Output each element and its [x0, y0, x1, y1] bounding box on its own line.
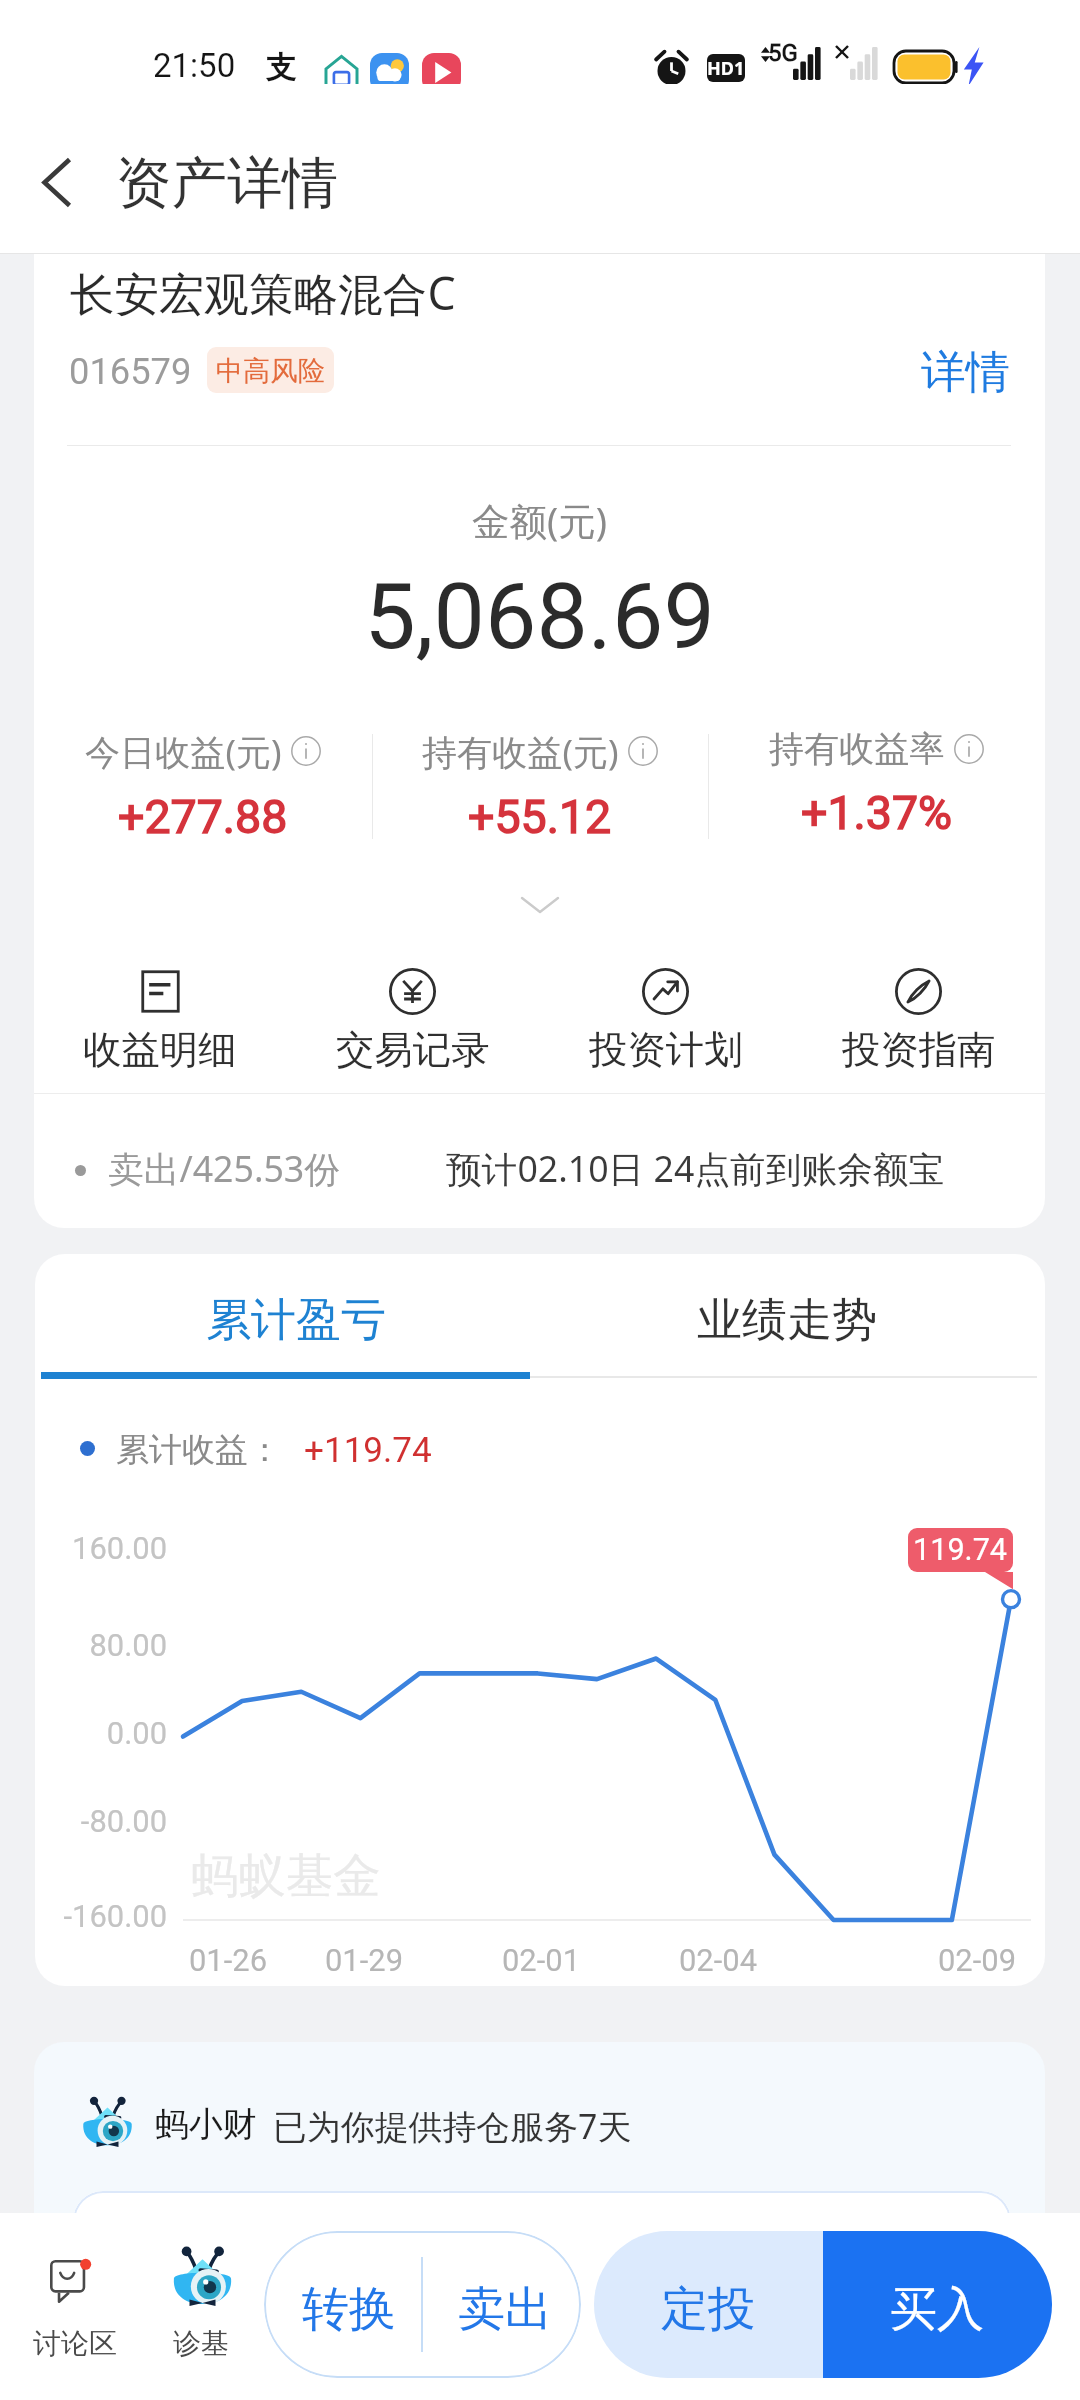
- staticText: 蚂蚁基金: [191, 1846, 381, 1906]
- staticText: 买入: [890, 2280, 985, 2339]
- button[interactable]: 转换: [264, 2231, 421, 2378]
- staticText: 投资计划: [589, 1026, 743, 1074]
- staticText: 金额(元): [34, 495, 1045, 546]
- staticText: 0.00: [35, 1715, 167, 1751]
- button[interactable]: 详情: [909, 332, 1022, 412]
- staticText: 5,068.69: [34, 563, 1045, 670]
- staticText: 5G: [768, 39, 798, 67]
- button[interactable]: 交易记录: [286, 968, 539, 1074]
- button[interactable]: 累计盈亏: [101, 1254, 491, 1390]
- staticText: 02-04: [658, 1942, 778, 1978]
- staticText: 详情: [921, 344, 1010, 400]
- staticText: 收益明细: [83, 1026, 237, 1074]
- staticText: 转换: [302, 2280, 397, 2339]
- staticText: 119.74: [913, 1532, 1008, 1568]
- staticText: 业绩走势: [697, 1292, 877, 1349]
- staticText: +119.74: [304, 1429, 432, 1470]
- staticText: 今日收益(元): [85, 727, 282, 775]
- staticText: 长安宏观策略混合C: [70, 262, 456, 323]
- staticText: +55.12: [468, 790, 612, 844]
- staticText: 诊基: [150, 2326, 252, 2361]
- button[interactable]: 今日收益(元): [34, 727, 371, 865]
- button[interactable]: 诊基: [150, 2231, 252, 2375]
- staticText: 01-26: [168, 1942, 288, 1978]
- staticText: 持有收益率: [769, 727, 945, 771]
- staticText: 02-09: [917, 1942, 1037, 1978]
- staticText: 支: [266, 49, 296, 87]
- button[interactable]: 投资指南: [792, 968, 1045, 1074]
- button[interactable]: 收益明细: [34, 968, 286, 1074]
- staticText: 持有收益(元): [422, 727, 619, 775]
- staticText: +1.37%: [801, 786, 953, 840]
- staticText: 80.00: [35, 1627, 167, 1663]
- staticText: 蚂小财: [155, 2103, 257, 2146]
- staticText: 016579: [69, 350, 192, 393]
- staticText: 卖出/425.53份: [108, 1144, 340, 1193]
- staticText: 中高风险: [216, 354, 326, 388]
- button[interactable]: 业绩走势: [592, 1254, 982, 1390]
- staticText: 交易记录: [336, 1026, 490, 1074]
- staticText: 预计02.10日 24点前到账余额宝: [446, 1144, 945, 1193]
- staticText: -80.00: [35, 1803, 167, 1839]
- button[interactable]: 持有收益率: [708, 727, 1045, 865]
- staticText: 资产详情: [116, 149, 338, 219]
- button[interactable]: 定投: [594, 2231, 823, 2378]
- button[interactable]: 投资计划: [539, 968, 792, 1074]
- button[interactable]: 卖出/425.53份: [34, 1094, 1045, 1228]
- staticText: 160.00: [35, 1530, 167, 1566]
- staticText: HD1: [707, 56, 745, 81]
- button[interactable]: 卖出: [423, 2231, 581, 2378]
- staticText: 卖出: [458, 2280, 553, 2339]
- button[interactable]: Discussion: [6, 2240, 144, 2372]
- staticText: 21:50: [153, 46, 236, 85]
- staticText: 累计收益：: [116, 1429, 281, 1471]
- staticText: 已为你提供持仓服务7天: [273, 2103, 632, 2149]
- button[interactable]: Back: [15, 140, 99, 224]
- staticText: 01-29: [304, 1942, 424, 1978]
- staticText: 讨论区: [23, 2326, 127, 2361]
- staticText: 投资指南: [842, 1026, 996, 1074]
- button[interactable]: 买入: [823, 2231, 1052, 2378]
- staticText: 累计盈亏: [206, 1292, 386, 1349]
- staticText: 定投: [661, 2280, 756, 2339]
- staticText: 02-01: [481, 1942, 601, 1978]
- staticText: -160.00: [35, 1898, 167, 1934]
- button[interactable]: 持有收益(元): [371, 727, 708, 865]
- staticText: +277.88: [118, 790, 288, 844]
